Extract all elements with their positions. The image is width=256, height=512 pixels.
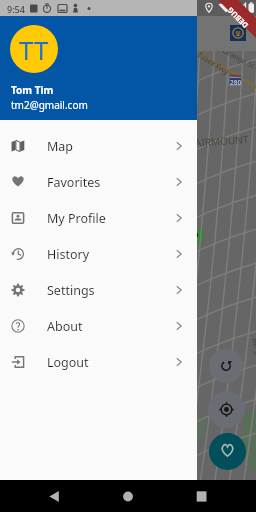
button[interactable]: History	[0, 236, 197, 272]
staticText: About	[47, 318, 83, 335]
button[interactable]: Map	[0, 128, 197, 164]
staticText: Logout	[47, 354, 89, 371]
button[interactable]: Profile photo	[10, 25, 58, 73]
button[interactable]: Logout	[0, 344, 197, 380]
staticText: Bergen St	[250, 337, 256, 373]
staticText: My Profile	[47, 210, 106, 227]
staticText: Orange St	[221, 45, 256, 71]
button[interactable]: App logo	[230, 25, 246, 41]
button[interactable]: Recent apps	[178, 480, 226, 512]
staticText: Hunterdon St	[253, 170, 256, 219]
button[interactable]: Favorites	[0, 164, 197, 200]
button[interactable]: About	[0, 308, 197, 344]
staticText: Favorites	[47, 174, 101, 191]
button[interactable]: Home	[104, 480, 152, 512]
button[interactable]: Refresh	[209, 349, 243, 383]
button[interactable]: My location	[208, 391, 245, 428]
button[interactable]: Back	[30, 480, 78, 512]
staticText: 9:54	[7, 3, 25, 15]
staticText: tm2@gmail.com	[11, 98, 88, 112]
staticText: Essex Fwy	[196, 49, 231, 77]
staticText: DEBUG	[225, 5, 250, 31]
button[interactable]: My Profile	[0, 200, 197, 236]
button[interactable]: Add to favorites	[209, 433, 246, 470]
staticText: Settings	[47, 282, 95, 299]
button[interactable]: Settings	[0, 272, 197, 308]
staticText: Map	[47, 138, 74, 155]
staticText: FAIRMOUNT	[190, 132, 249, 150]
staticText: Tom Tim	[11, 83, 54, 97]
staticText: History	[47, 246, 90, 263]
staticText: 280	[230, 78, 242, 87]
staticText: TT	[19, 32, 49, 67]
